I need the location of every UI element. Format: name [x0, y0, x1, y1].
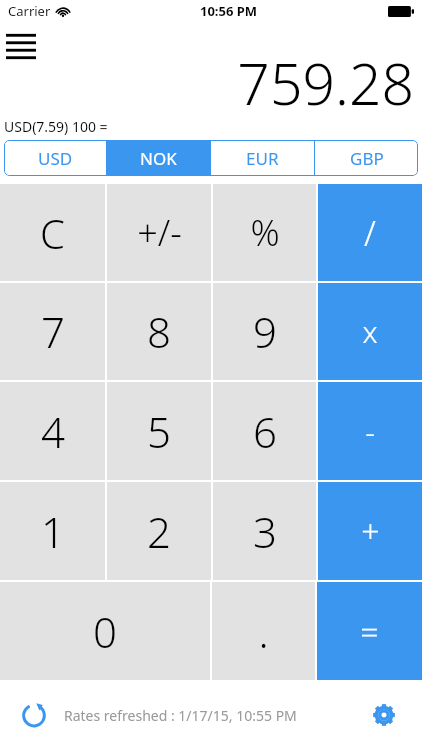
button[interactable]: 3 [213, 482, 316, 580]
staticText: 9 [253, 303, 277, 360]
staticText: 3 [253, 503, 277, 560]
button[interactable]: 0 [0, 582, 210, 680]
button[interactable]: 8 [107, 283, 211, 380]
staticText: C [40, 206, 65, 260]
button[interactable]: . [212, 582, 315, 680]
staticText: . [258, 603, 269, 660]
staticText: 5 [147, 403, 171, 460]
button[interactable]: 2 [107, 482, 211, 580]
button[interactable]: Menu [0, 26, 44, 66]
button[interactable]: 4 [0, 382, 105, 480]
staticText: 8 [147, 303, 171, 360]
staticText: 0 [93, 603, 117, 660]
button[interactable]: GBP [315, 140, 418, 176]
staticText: 1 [41, 503, 65, 560]
staticText: GBP [350, 147, 384, 170]
staticText: 6 [253, 403, 277, 460]
button[interactable]: Refresh rates [14, 695, 54, 735]
button[interactable]: - [318, 382, 422, 480]
button[interactable]: / [318, 184, 422, 281]
button[interactable]: + [318, 482, 422, 580]
staticText: 759.28 [237, 44, 414, 122]
button[interactable]: USD [4, 140, 106, 176]
button[interactable]: 9 [213, 283, 316, 380]
staticText: Carrier [8, 2, 51, 20]
staticText: EUR [246, 147, 279, 170]
staticText: USD [38, 147, 73, 170]
button[interactable]: Settings [364, 695, 404, 735]
staticText: x [362, 311, 378, 352]
staticText: 7 [41, 303, 65, 360]
button[interactable]: 5 [107, 382, 211, 480]
button[interactable]: C [0, 184, 105, 281]
button[interactable]: NOK [107, 140, 210, 176]
staticText: 10:56 PM [200, 2, 258, 20]
staticText: = [360, 609, 379, 653]
button[interactable]: x [318, 283, 422, 380]
staticText: +/- [137, 208, 182, 257]
button[interactable]: EUR [211, 140, 314, 176]
staticText: % [250, 208, 280, 257]
button[interactable]: 1 [0, 482, 105, 580]
staticText: Rates refreshed : 1/17/15, 10:55 PM [64, 706, 297, 725]
button[interactable]: % [213, 184, 316, 281]
staticText: - [365, 411, 375, 452]
staticText: 4 [41, 403, 65, 460]
button[interactable]: 6 [213, 382, 316, 480]
button[interactable]: 7 [0, 283, 105, 380]
staticText: 2 [147, 503, 171, 560]
staticText: USD(7.59) 100 = [4, 117, 108, 136]
button[interactable]: = [317, 582, 422, 680]
button[interactable]: +/- [107, 184, 211, 281]
staticText: / [364, 210, 376, 256]
staticText: + [361, 509, 380, 553]
staticText: NOK [140, 147, 177, 170]
